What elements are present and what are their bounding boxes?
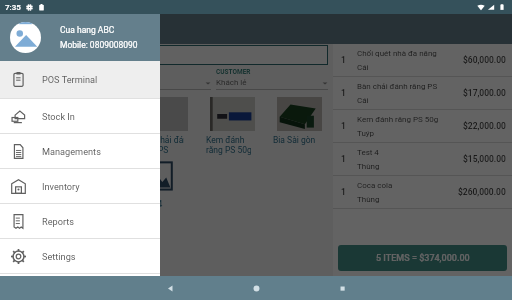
staticText: POS Terminal (42, 74, 98, 85)
staticText: Reports (42, 216, 75, 227)
button[interactable]: Reports (0, 204, 160, 238)
button[interactable]: CUSTOMER (216, 68, 328, 90)
staticText: 1 (341, 55, 346, 65)
button[interactable]: Bàn chải đánh răng PS (143, 97, 188, 155)
staticText: Managements (42, 146, 101, 157)
staticText: 1 (341, 88, 346, 98)
staticText: Cua hang ABC (60, 25, 115, 35)
button[interactable]: Chối quét nhà đa năng (77, 97, 121, 155)
button[interactable]: Inventory (0, 169, 160, 203)
staticText: Kem đánh răng PS 50g (206, 135, 251, 155)
staticText: Bia Sài gòn (273, 135, 316, 145)
staticText: $22,000.00 (463, 121, 506, 131)
button[interactable]: POS Terminal (0, 61, 160, 98)
staticText: Chối quét nhà đa năng (73, 135, 117, 155)
staticText: $60,000.00 (463, 55, 506, 65)
staticText: Enter product name/code (10, 51, 101, 60)
staticText: Test 4 (357, 148, 379, 157)
button[interactable]: 1 (333, 44, 512, 77)
button[interactable]: Test 1 (11, 161, 55, 219)
staticText: Cái (357, 63, 369, 72)
staticText: 1 (341, 187, 346, 197)
staticText: Cái (357, 96, 369, 105)
staticText: Coca cola (7, 135, 45, 145)
button[interactable]: Coca cola (11, 97, 55, 155)
staticText: CATEGORY (5, 68, 38, 76)
staticText: Bàn chải đánh răng PS (357, 82, 438, 91)
staticText: Inventory (42, 181, 80, 192)
staticText: Chối quét nhà đa năng (357, 49, 437, 58)
staticText: 5 ITEMS = $374,000.00 (376, 253, 470, 264)
staticText: Test 2 (73, 199, 97, 209)
button[interactable]: Settings (0, 239, 160, 273)
button[interactable]: Test 2 (77, 161, 121, 219)
staticText: 1 (341, 121, 346, 131)
button[interactable]: Recent apps (299, 276, 385, 300)
staticText: Thùng (357, 195, 380, 204)
button[interactable]: 1 (333, 176, 512, 209)
button[interactable]: Stock In (0, 99, 160, 133)
button[interactable]: Back (127, 276, 213, 300)
staticText: 1 (341, 154, 346, 164)
staticText: Settings (42, 251, 76, 262)
staticText: Mobile: 0809008090 (60, 40, 138, 50)
button[interactable]: 1 (333, 77, 512, 110)
staticText: Kem đánh răng PS 50g (357, 115, 439, 124)
button[interactable]: Test 4 (143, 161, 188, 219)
button[interactable]: 1 (333, 143, 512, 176)
button[interactable]: 1 (333, 110, 512, 143)
staticText: Stock In (42, 111, 75, 122)
staticText: CUSTOMER (216, 68, 251, 76)
button[interactable]: Home (213, 276, 299, 300)
staticText: 7:35 (5, 3, 21, 12)
staticText: Khách lẻ (216, 78, 247, 87)
staticText: All (5, 78, 15, 87)
button[interactable]: CATEGORY (5, 68, 211, 90)
staticText: Test 4 (139, 199, 163, 209)
staticText: $15,000.00 (463, 154, 506, 164)
staticText: Bàn chải đánh răng PS (139, 135, 184, 155)
staticText: $17,000.00 (463, 88, 506, 98)
staticText: Test 1 (7, 199, 31, 209)
button[interactable]: Managements (0, 134, 160, 168)
staticText: Tuýp (357, 129, 375, 138)
button[interactable]: Bia Sài gòn (277, 97, 322, 155)
button[interactable]: Kem đánh răng PS 50g (210, 97, 255, 155)
staticText: $260,000.00 (458, 187, 506, 197)
staticText: Coca cola (357, 181, 393, 190)
button[interactable]: 5 ITEMS = $374,000.00 (338, 245, 507, 271)
staticText: Thùng (357, 162, 380, 171)
